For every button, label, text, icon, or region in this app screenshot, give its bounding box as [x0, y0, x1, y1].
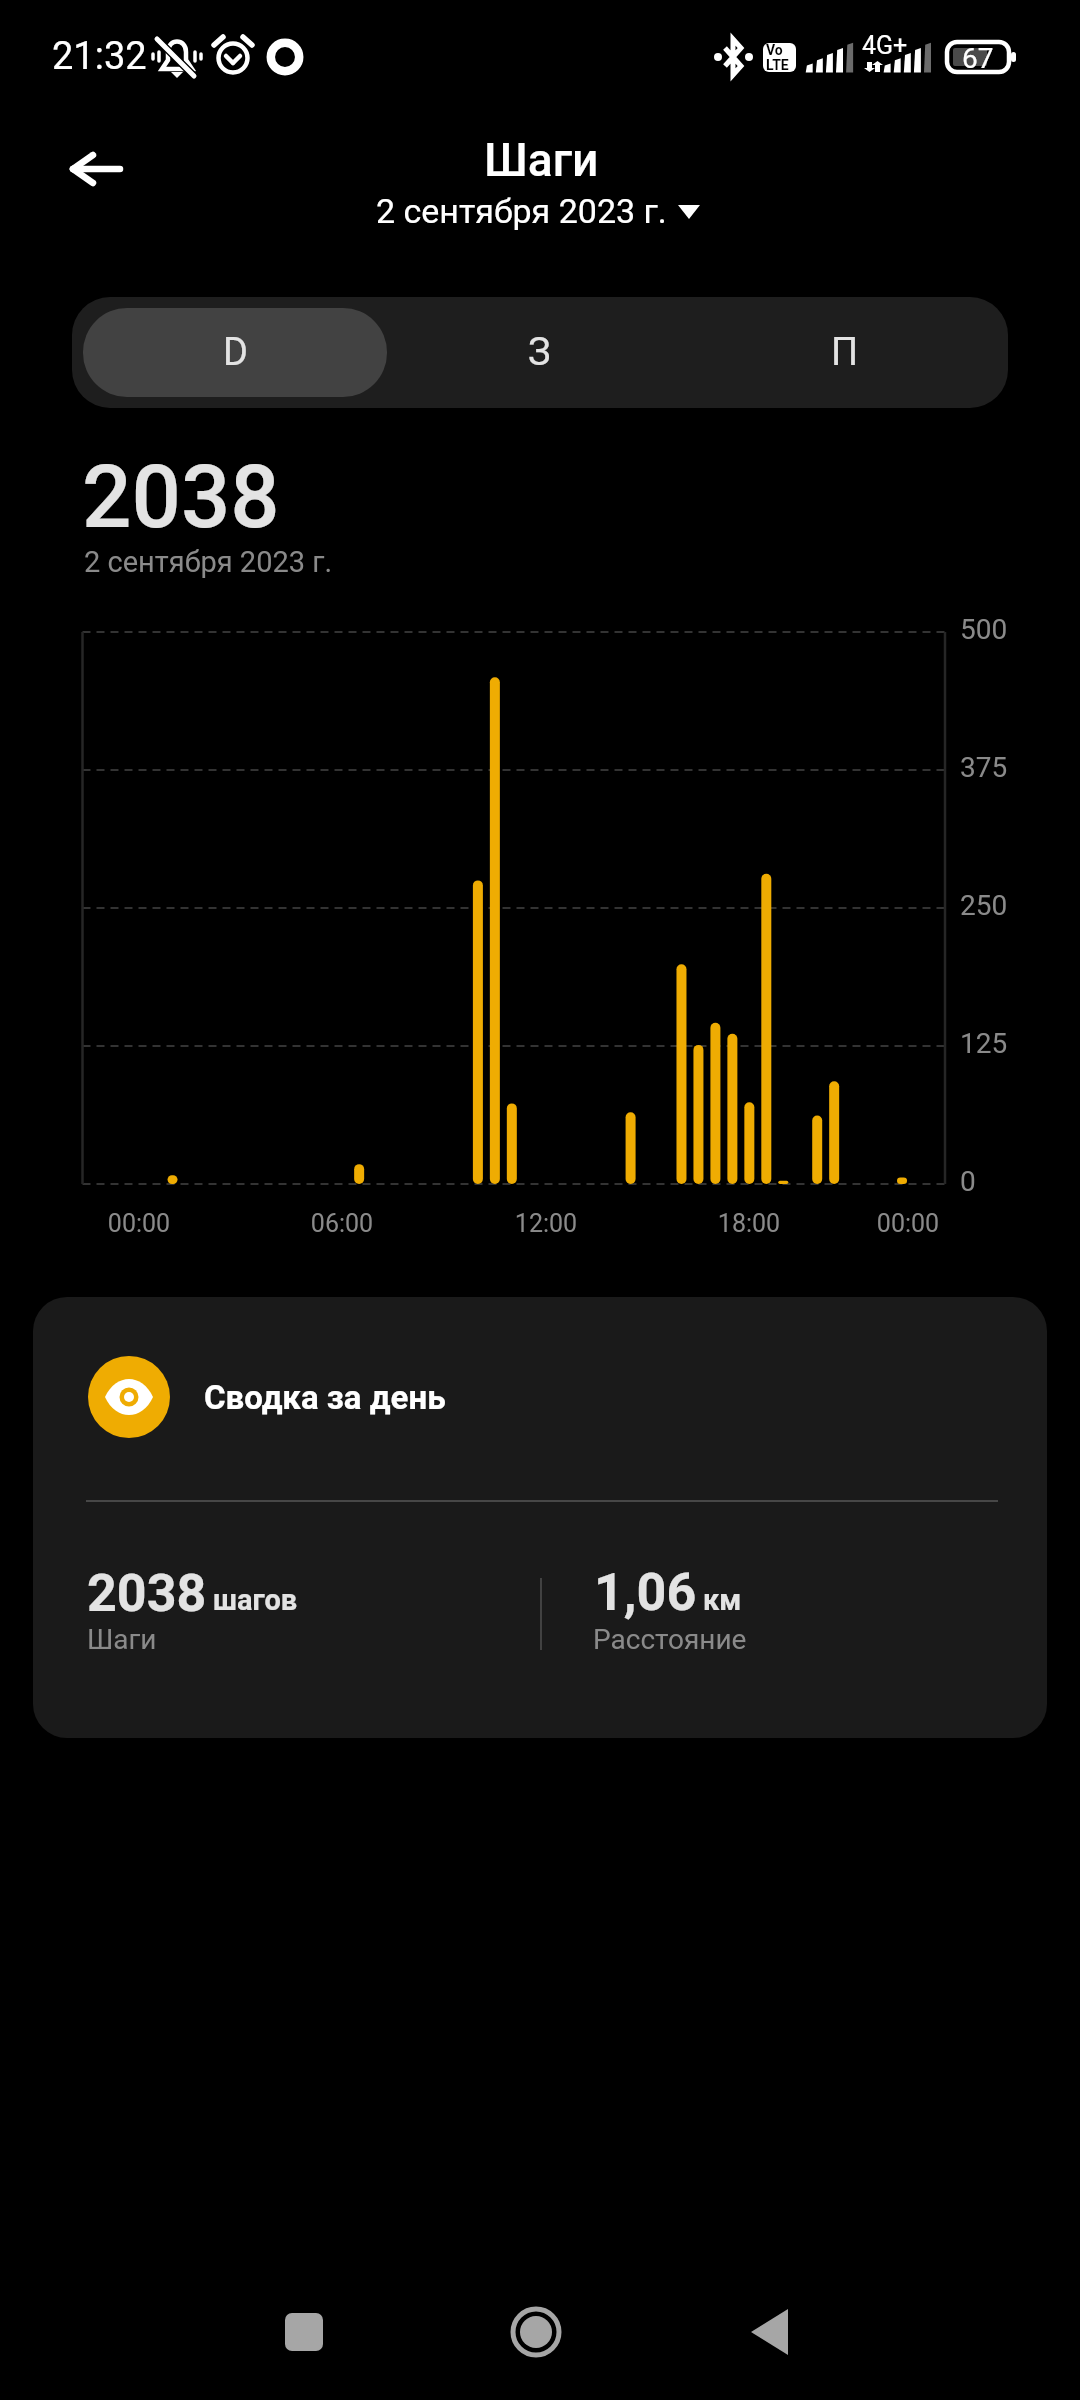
staticText: 2038 — [82, 446, 280, 548]
staticText: км — [703, 1583, 742, 1617]
staticText: 18:00 — [679, 1209, 819, 1238]
staticText: 250 — [960, 889, 1008, 922]
staticText: 500 — [960, 613, 1008, 646]
staticText: 67 — [962, 42, 994, 75]
staticText: Сводка за день — [204, 1378, 446, 1417]
staticText: 0 — [960, 1165, 976, 1198]
button[interactable]: Home — [476, 2272, 596, 2392]
button[interactable]: Back — [49, 121, 145, 217]
staticText: 21:32 — [52, 34, 147, 79]
staticText: 06:00 — [272, 1209, 412, 1238]
staticText: 2 сентября 2023 г. — [376, 191, 667, 231]
button[interactable]: Recent apps — [244, 2272, 364, 2392]
button[interactable]: 2 сентября 2023 г. — [372, 188, 704, 234]
staticText: З — [528, 330, 551, 375]
staticText: 1,06 — [594, 1562, 697, 1623]
staticText: 2 сентября 2023 г. — [84, 545, 333, 579]
staticText: Шаги — [87, 1623, 157, 1656]
staticText: Vo LTE — [766, 42, 789, 73]
staticText: 125 — [960, 1027, 1008, 1060]
staticText: 00:00 — [838, 1209, 978, 1238]
staticText: 12:00 — [476, 1209, 616, 1238]
button[interactable]: З — [387, 308, 692, 397]
staticText: 2038 — [87, 1563, 207, 1624]
staticText: 4G+ — [862, 31, 908, 60]
staticText: D — [223, 330, 248, 375]
button[interactable]: Сводка за день — [33, 1297, 1047, 1738]
staticText: 375 — [960, 751, 1008, 784]
button[interactable]: Back — [709, 2272, 829, 2392]
staticText: Шаги — [484, 133, 599, 187]
staticText: П — [831, 330, 859, 375]
button[interactable]: D — [83, 308, 387, 397]
staticText: 00:00 — [69, 1209, 209, 1238]
staticText: шагов — [213, 1583, 298, 1617]
button[interactable]: П — [692, 308, 997, 397]
staticText: Расстояние — [593, 1623, 747, 1656]
